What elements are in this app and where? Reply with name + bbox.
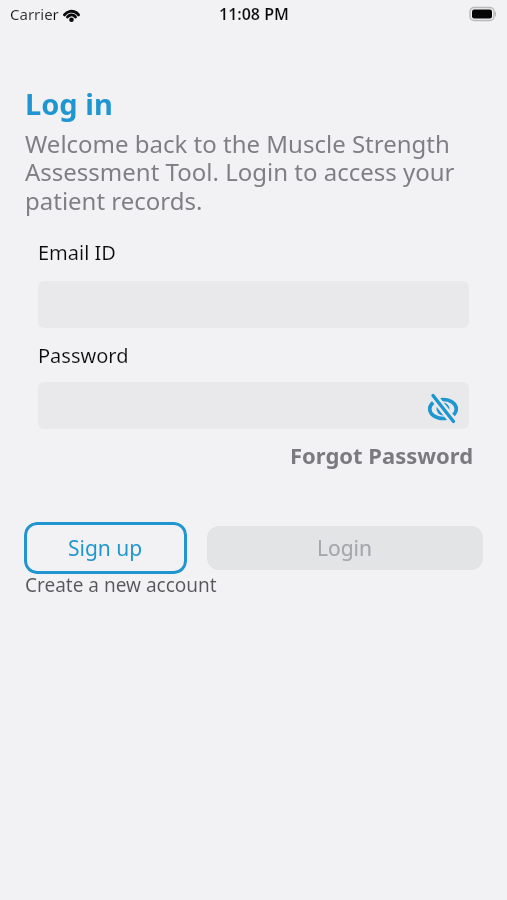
staticText: Password	[38, 342, 129, 369]
staticText: 11:08 PM	[219, 3, 289, 25]
button[interactable]	[427, 393, 459, 425]
button[interactable]	[38, 382, 469, 429]
staticText: Log in	[25, 84, 113, 123]
button[interactable]: Forgot Password	[290, 440, 474, 470]
staticText: Welcome back to the Muscle Strength Asse…	[25, 127, 455, 217]
staticText: Login	[317, 534, 373, 563]
staticText: Email ID	[38, 239, 116, 266]
button[interactable]: Create a new account	[25, 572, 217, 598]
staticText: Sign up	[68, 534, 143, 563]
button[interactable]: Login	[207, 526, 483, 570]
button[interactable]: Sign up	[24, 522, 187, 574]
staticText: Carrier	[10, 4, 59, 24]
